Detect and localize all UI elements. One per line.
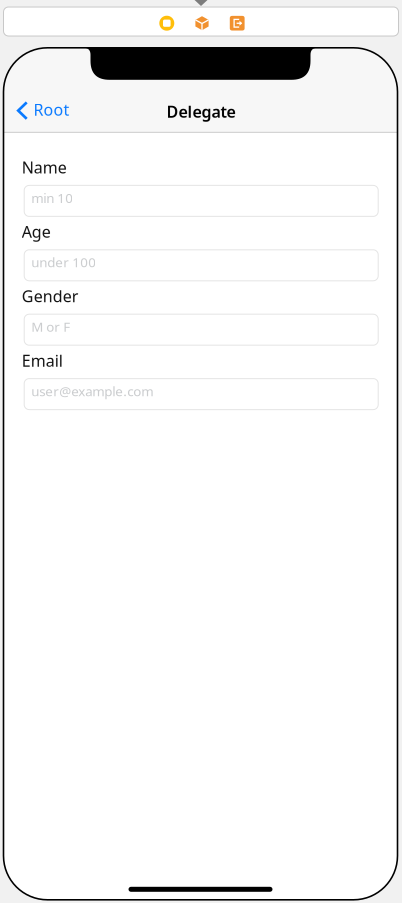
staticText: user@example.com [31,382,153,400]
staticText: min 10 [31,189,73,207]
staticText: Root [33,99,69,120]
staticText: Delegate [166,101,235,122]
button[interactable]: under 100 [24,250,378,281]
staticText: M or F [31,318,70,335]
button[interactable]: Root [3,89,71,127]
button[interactable]: Variants [226,12,248,34]
button[interactable]: Live Preview [156,12,178,34]
button[interactable]: M or F [24,314,378,345]
staticText: Age [22,221,51,242]
staticText: Name [22,157,67,178]
staticText: Gender [22,285,79,307]
button[interactable]: Selectable [191,12,213,34]
button[interactable]: user@example.com [24,379,378,410]
staticText: under 100 [31,253,96,271]
button[interactable]: min 10 [24,185,378,216]
staticText: Email [22,350,63,371]
